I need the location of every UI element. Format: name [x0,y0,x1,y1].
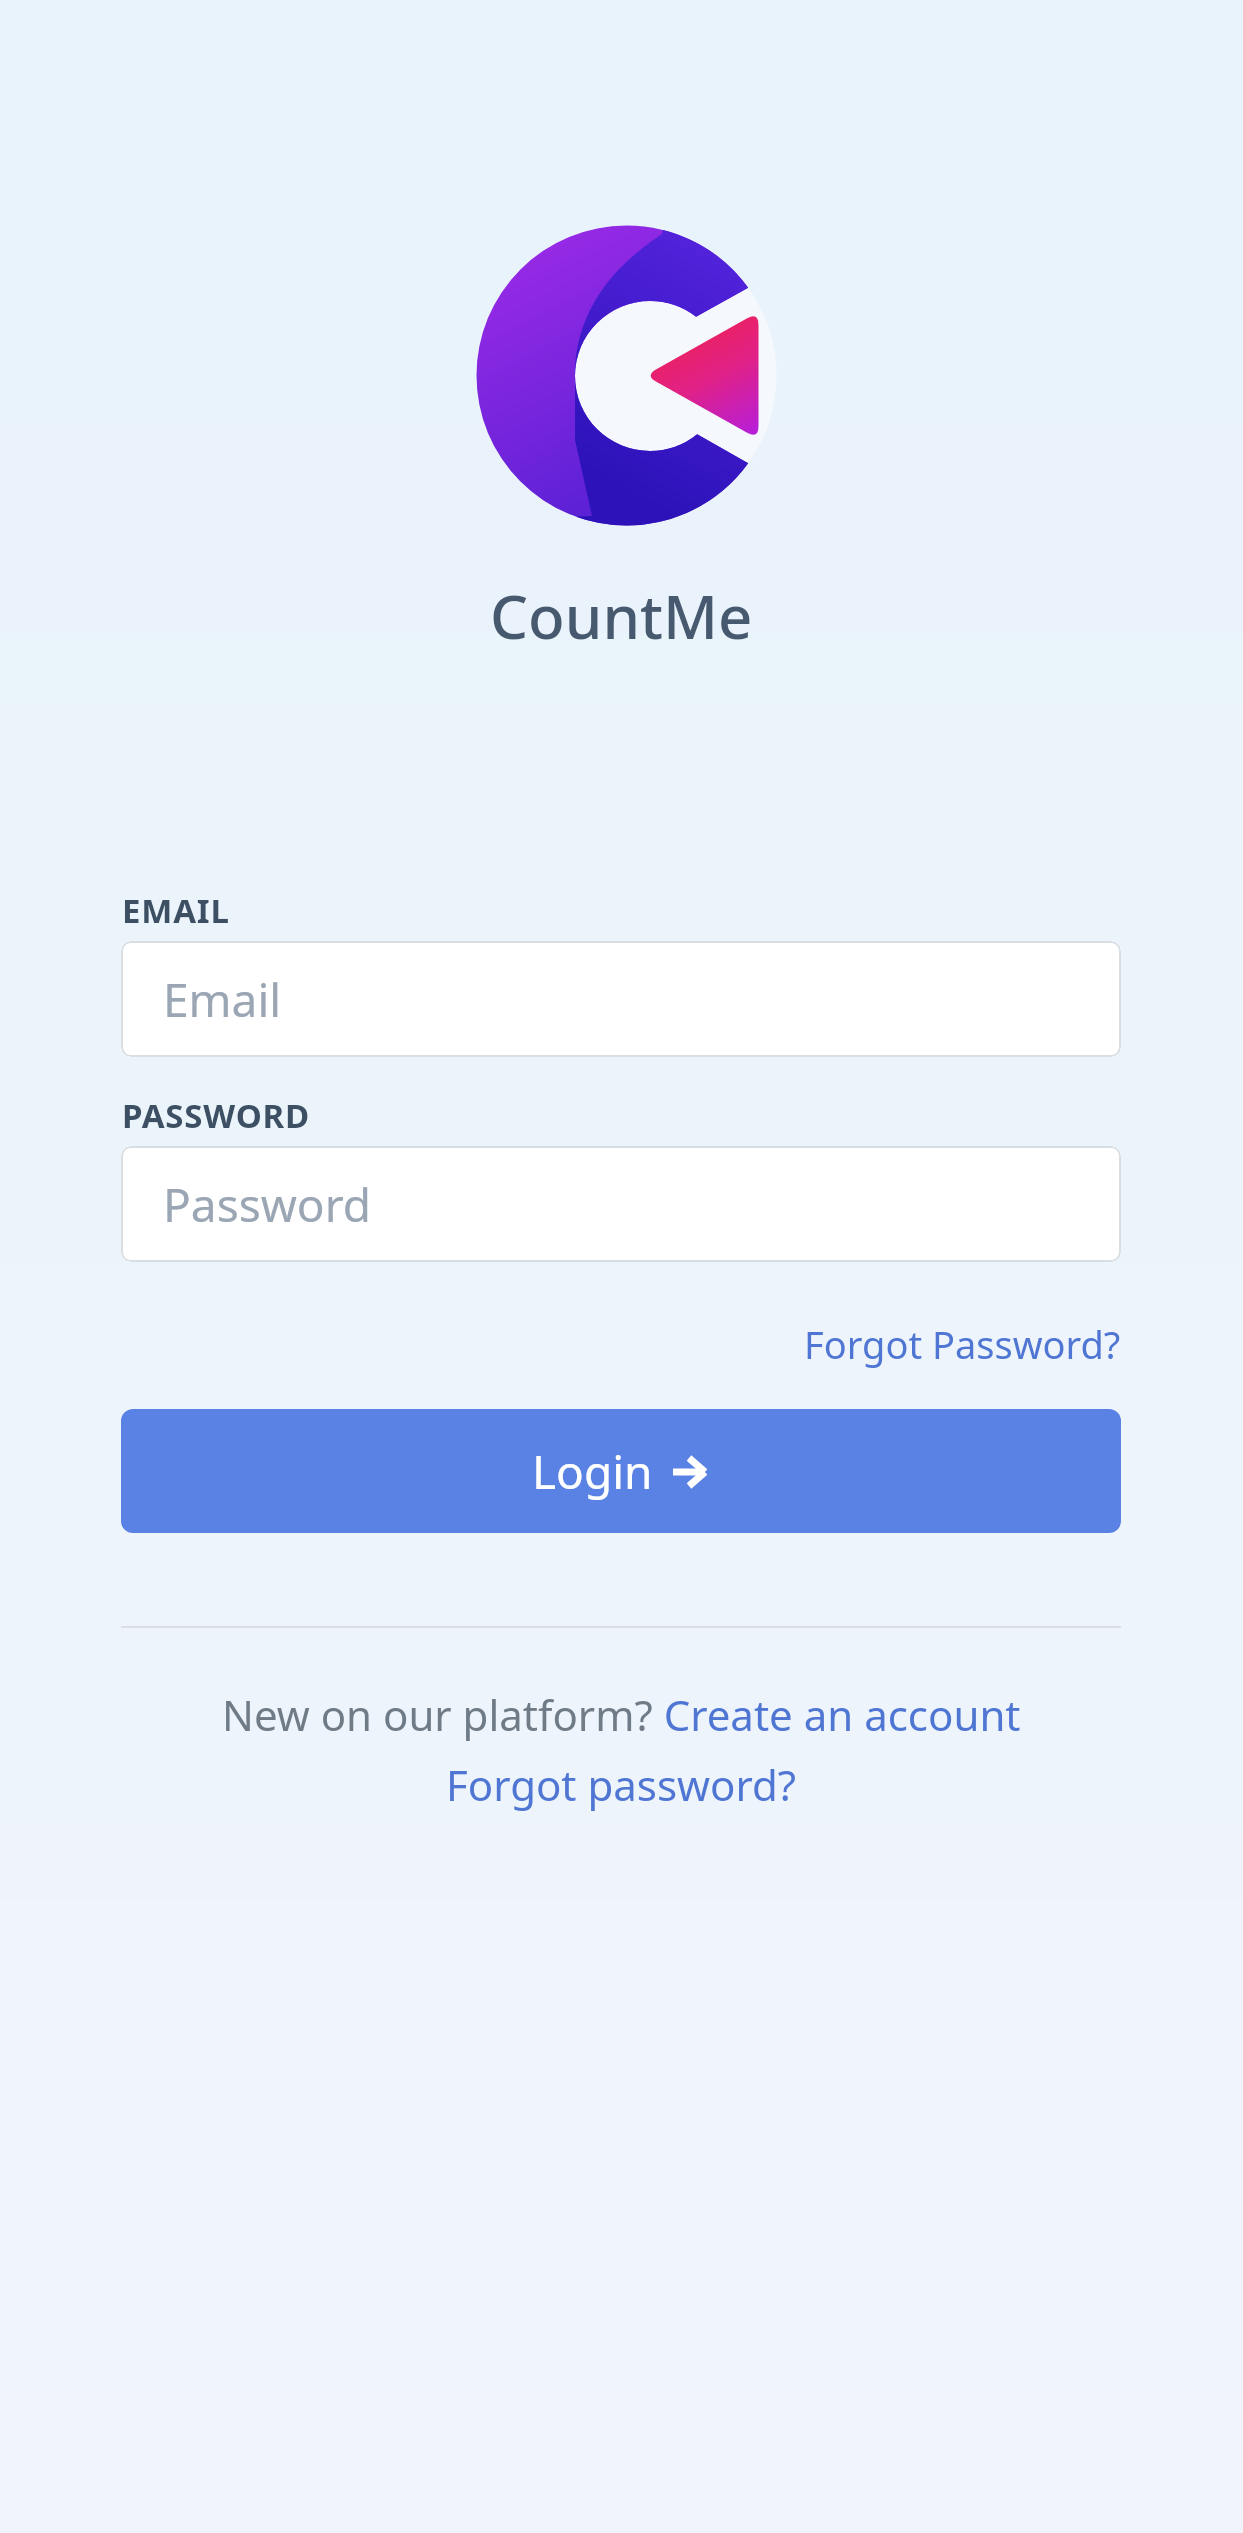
staticText: Password [163,1173,372,1236]
staticText: Email [163,968,282,1031]
button[interactable]: Email [121,941,1121,1057]
staticText: PASSWORD [122,1093,310,1138]
button[interactable]: New on our platform? Create an account [222,1686,1021,1743]
button[interactable]: Forgot password? [446,1756,797,1813]
staticText: EMAIL [122,888,230,933]
button[interactable]: Login [121,1409,1121,1533]
staticText: CountMe [490,575,753,657]
staticText: Login [532,1440,653,1503]
button[interactable]: Password [121,1146,1121,1262]
button[interactable]: Forgot Password? [804,1318,1121,1370]
